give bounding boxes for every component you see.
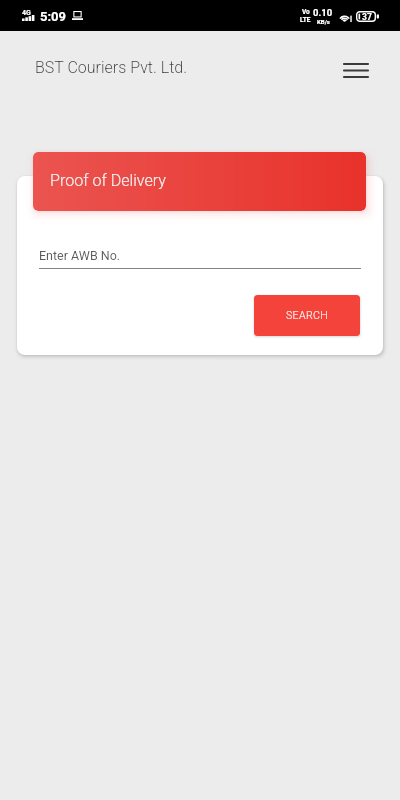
staticText: KB/s — [317, 18, 330, 25]
button[interactable]: Open navigation menu — [336, 50, 376, 90]
staticText: 0.10 — [313, 7, 333, 18]
staticText: Enter AWB No. — [39, 248, 121, 263]
staticText: Proof of Delivery — [50, 171, 166, 190]
staticText: 5:09 — [40, 9, 67, 24]
staticText: Vo — [302, 8, 310, 16]
staticText: 37 — [362, 12, 372, 22]
button[interactable]: SEARCH — [254, 295, 360, 336]
staticText: 4G — [22, 9, 31, 17]
staticText: SEARCH — [286, 309, 329, 321]
staticText: BST Couriers Pvt. Ltd. — [35, 58, 188, 77]
staticText: LTE — [300, 16, 311, 24]
